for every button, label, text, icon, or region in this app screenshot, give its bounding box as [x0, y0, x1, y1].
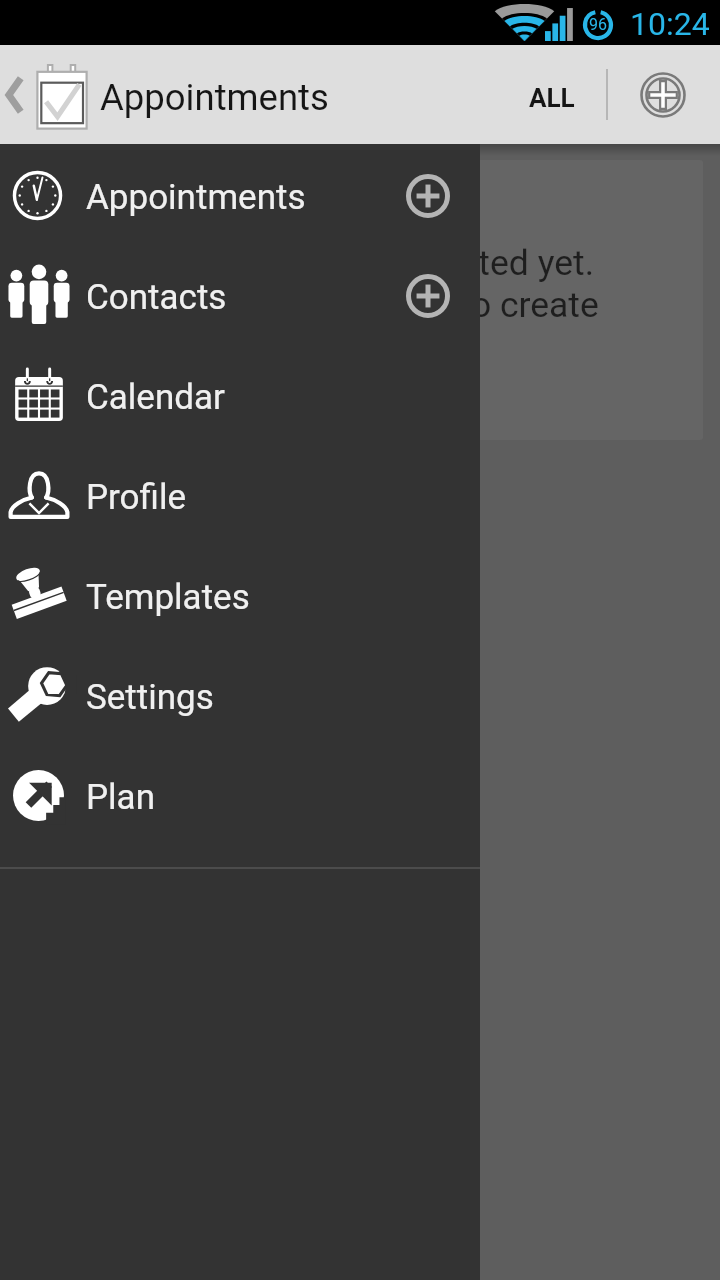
staticText: Appointments	[86, 177, 306, 218]
button[interactable]: Add Appointments	[378, 146, 478, 246]
staticText: Settings	[86, 677, 214, 718]
staticText: 96	[589, 15, 607, 34]
staticText: ALL	[529, 83, 575, 113]
button[interactable]: ALL	[489, 45, 606, 144]
button[interactable]: Profile	[0, 446, 480, 546]
button[interactable]: Templates	[0, 546, 480, 646]
button[interactable]: Calendar	[0, 346, 480, 446]
staticText: Templates	[86, 577, 250, 618]
button[interactable]: Add appointment	[608, 45, 720, 144]
button[interactable]: Appointments	[0, 146, 480, 246]
staticText: Profile	[86, 477, 187, 518]
button[interactable]: Add Contacts	[378, 246, 478, 346]
staticText: No appointments created yet. Use the + i…	[19, 242, 703, 326]
staticText: Appointments	[100, 76, 329, 119]
staticText: Calendar	[86, 377, 225, 418]
button[interactable]: Contacts	[0, 246, 480, 346]
button[interactable]: Plan	[0, 746, 480, 846]
button[interactable]: Navigate up	[0, 45, 92, 144]
staticText: Plan	[86, 777, 155, 818]
staticText: Contacts	[86, 277, 227, 318]
button[interactable]: Settings	[0, 646, 480, 746]
staticText: 10:24	[630, 5, 710, 43]
